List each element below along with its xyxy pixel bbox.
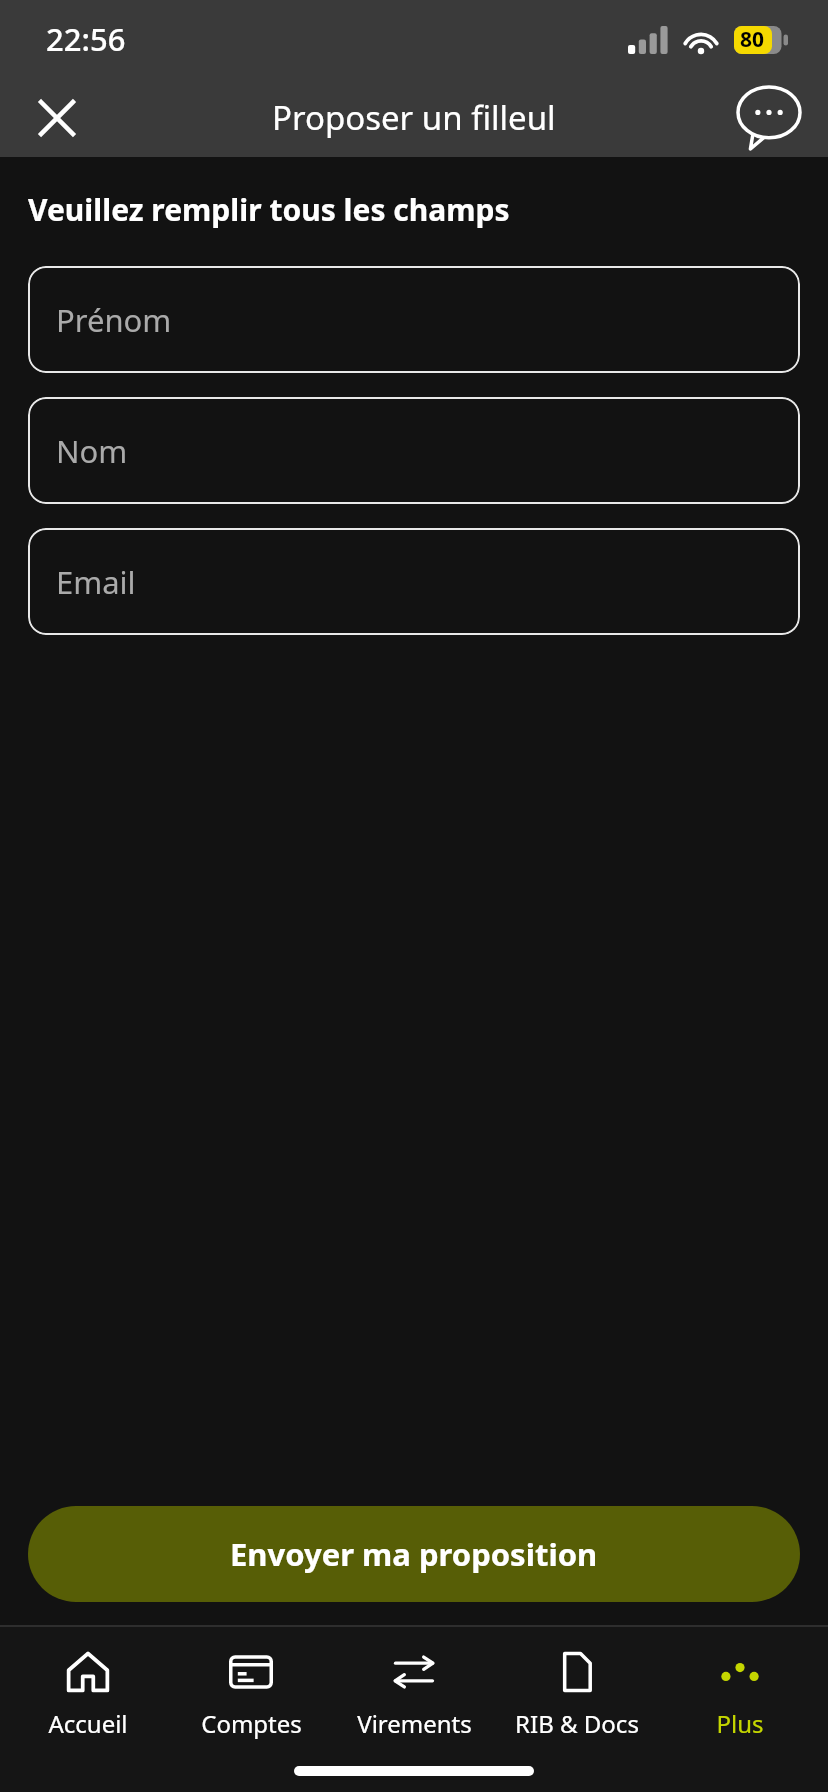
staticText: Nom: [56, 430, 128, 472]
button[interactable]: Prénom: [28, 266, 800, 373]
staticText: Comptes: [201, 1707, 302, 1740]
button[interactable]: Email: [28, 528, 800, 635]
staticText: RIB & Docs: [515, 1707, 639, 1740]
staticText: Accueil: [48, 1707, 128, 1740]
button[interactable]: Accueil: [13, 1645, 163, 1744]
staticText: Envoyer ma proposition: [230, 1533, 598, 1575]
staticText: Virements: [357, 1707, 472, 1740]
staticText: Plus: [716, 1707, 764, 1740]
button[interactable]: Envoyer ma proposition: [28, 1506, 800, 1602]
staticText: Prénom: [56, 299, 172, 341]
button[interactable]: Aide: [736, 85, 802, 151]
button[interactable]: Nom: [28, 397, 800, 504]
staticText: Veuillez remplir tous les champs: [28, 189, 510, 230]
button[interactable]: Plus: [665, 1645, 815, 1744]
staticText: 22:56: [46, 18, 126, 60]
staticText: 80: [740, 25, 765, 54]
button[interactable]: Virements: [339, 1645, 489, 1744]
button[interactable]: Fermer: [26, 87, 88, 149]
button[interactable]: RIB & Docs: [502, 1645, 652, 1744]
staticText: Proposer un filleul: [272, 95, 556, 140]
staticText: Email: [56, 561, 136, 603]
button[interactable]: Comptes: [176, 1645, 326, 1744]
